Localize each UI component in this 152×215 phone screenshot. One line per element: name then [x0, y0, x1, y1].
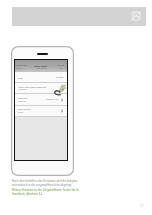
staticText: Neue Notiz: [34, 64, 48, 67]
staticText: aktiv: [59, 67, 64, 70]
staticText: 12: [139, 203, 144, 208]
staticText: Fertig: [58, 64, 64, 67]
button[interactable]: Fällig am: [15, 94, 67, 105]
staticText: Optional: [18, 88, 27, 91]
staticText: Titel: [18, 76, 23, 79]
button[interactable]: Erinnerung: [15, 106, 67, 116]
staticText: Optional: [18, 100, 27, 103]
button[interactable]: Abbrechen: [15, 60, 31, 72]
staticText: Abbrechen: [16, 64, 28, 67]
staticText: Liste Arbeit: [36, 67, 47, 70]
staticText: Notiz oder Beschreibung: [18, 85, 46, 88]
staticText: Weitere Hinweise zu den Eingabefeldern f…: [12, 188, 80, 196]
button[interactable]: Fertig: [51, 60, 67, 72]
staticText: Morgen 9:00: [46, 98, 59, 101]
button[interactable]: Titel: [15, 72, 67, 82]
staticText: Erledigt: [56, 76, 64, 79]
staticText: Nach dem Schließen des Formulars wird di…: [12, 179, 80, 187]
staticText: Entwurf: [16, 67, 23, 70]
staticText: Fällig am: [18, 97, 28, 100]
staticText: Keine: [18, 111, 24, 114]
staticText: Erinnerung: [18, 108, 31, 111]
button[interactable]: Notiz oder Beschreibung: [15, 83, 67, 93]
